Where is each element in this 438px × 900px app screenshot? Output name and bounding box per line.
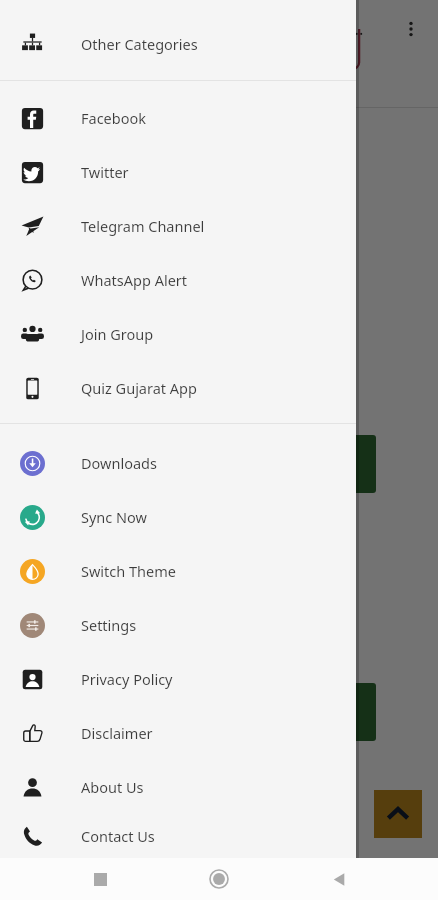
staticText: About Us [81,777,144,797]
button[interactable]: Home [199,859,239,899]
button[interactable]: Downloads [0,436,356,490]
button[interactable]: Sync Now [0,490,356,544]
staticText: Quiz Gujarat App [81,378,197,398]
staticText: Join Group [81,324,154,344]
staticText: material for all types of Gujarat [18,204,223,223]
button[interactable]: Settings [0,598,356,652]
button[interactable]: Telegram Channel [0,199,356,253]
button[interactable]: Facebook [0,91,356,145]
button[interactable]: Quiz Gujarat App [0,361,356,415]
button[interactable]: Back [319,859,359,899]
staticText: Switch Theme [81,561,176,581]
staticText: Privacy Policy [81,669,173,689]
button[interactable]: More options [394,12,428,46]
staticText: Downloads [81,453,157,473]
button[interactable]: Privacy Policy [0,652,356,706]
staticText: Settings [81,615,137,635]
button[interactable]: Join Group [0,307,356,361]
button[interactable]: Twitter [0,145,356,199]
button[interactable]: Other Categories [0,17,356,71]
button[interactable]: WhatsApp Alert [0,253,356,307]
button[interactable]: Disclaimer [0,706,356,760]
staticText: question papers and PDF with [18,268,216,287]
button[interactable]: About Us [0,760,356,814]
button[interactable]: Scroll to top [374,790,422,838]
staticText: … [350,17,364,40]
staticText: Disclaimer [81,723,153,743]
staticText: WhatsApp Alert [81,270,188,290]
staticText: DOWNLOAD PDF [150,455,263,474]
staticText: Contact Us [81,826,155,846]
staticText: Sync Now [81,507,147,527]
staticText: Telegram Channel [81,216,205,236]
staticText: Other Categories [81,34,198,54]
button[interactable]: START TEST [36,683,376,741]
staticText: Twitter [81,162,129,182]
button[interactable]: Recent apps [80,859,120,899]
button[interactable]: Switch Theme [0,544,356,598]
staticText: Facebook [81,108,147,128]
button[interactable]: DOWNLOAD PDF [36,435,376,493]
button[interactable]: Contact Us [0,814,356,858]
staticText: Paper Collection and preparation [18,172,236,191]
